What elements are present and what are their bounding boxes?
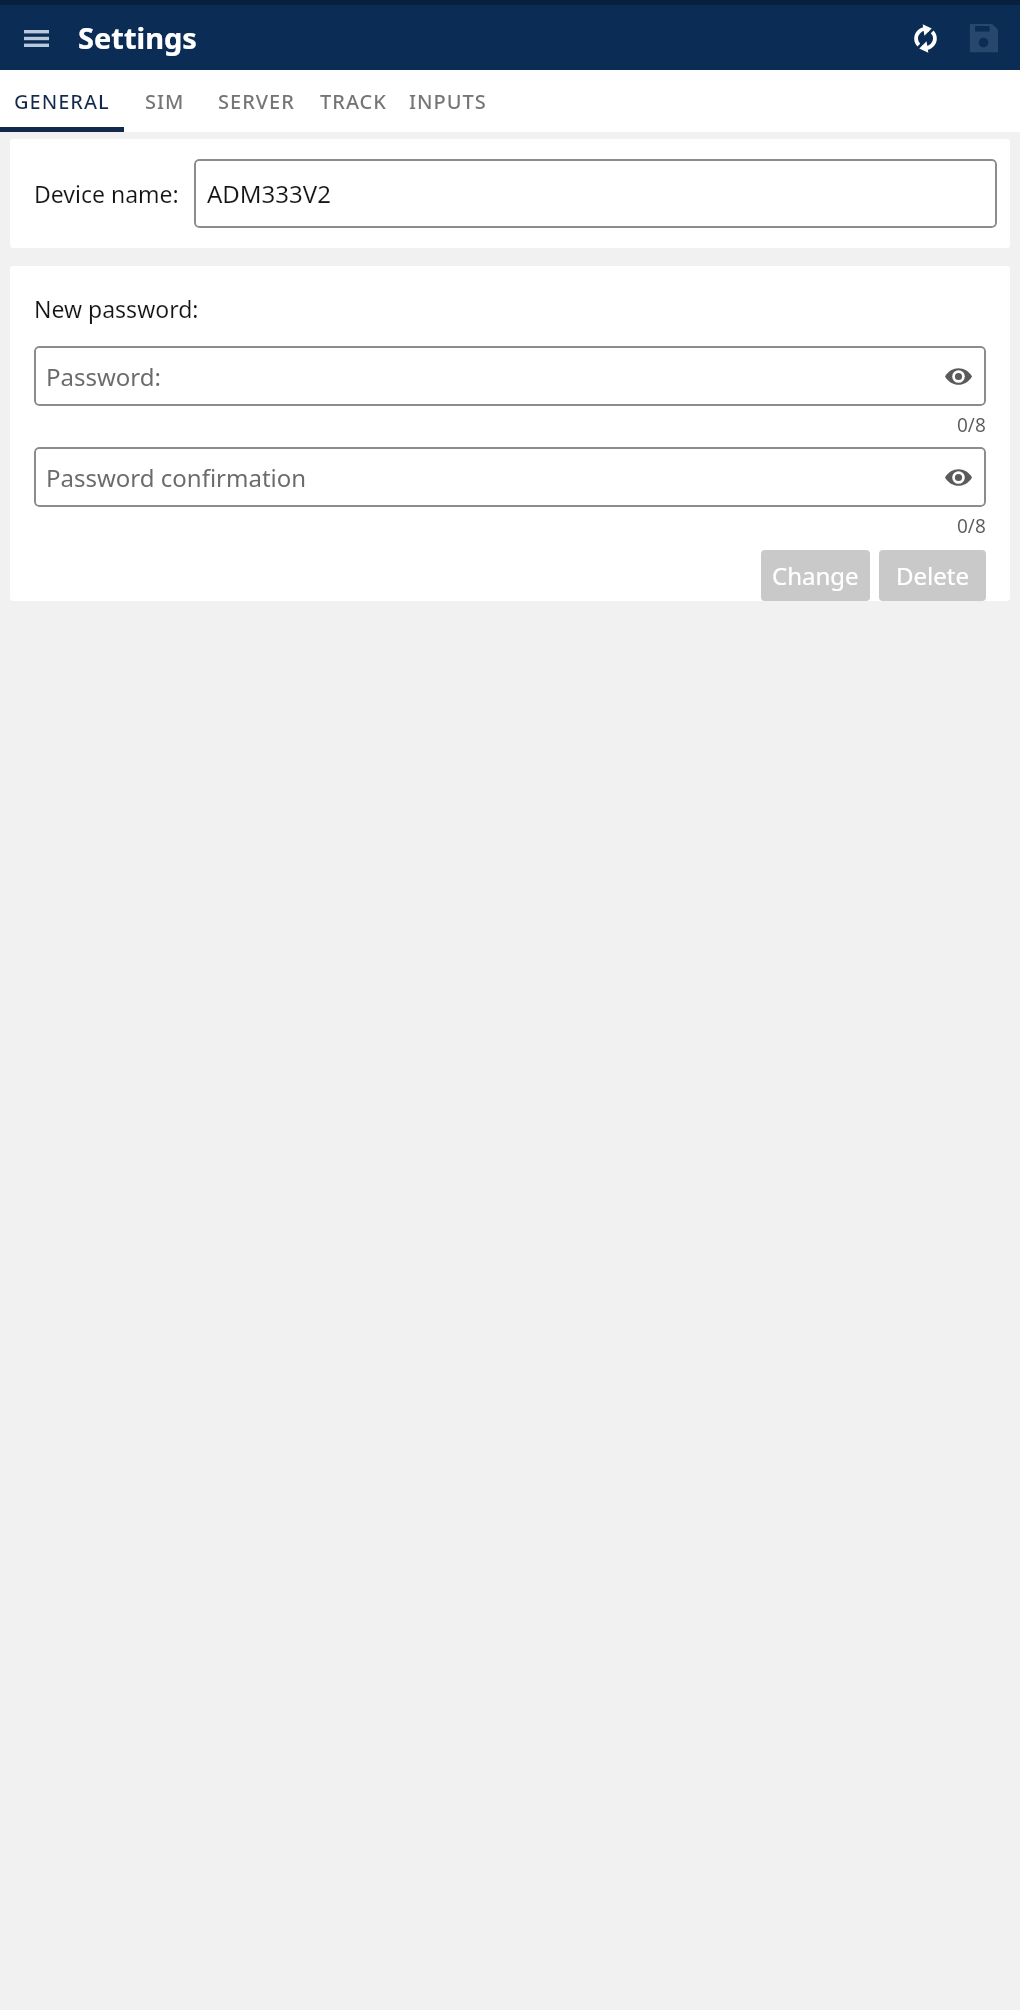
button[interactable]: Open navigation menu [14,16,58,60]
button[interactable]: Password: [34,346,986,406]
button[interactable]: Toggle password visibility [938,457,978,497]
staticText: INPUTS [409,88,487,115]
staticText: SIM [145,88,185,115]
button[interactable]: GENERAL [0,70,124,132]
staticText: Device name: [34,178,179,209]
staticText: 0/8 [957,513,986,539]
staticText: SERVER [218,88,295,115]
button[interactable]: INPUTS [400,70,496,132]
staticText: Settings [78,18,197,57]
staticText: Password: [46,360,161,393]
button[interactable]: ADM333V2 [194,159,997,228]
staticText: New password: [34,293,199,324]
staticText: Delete [896,559,969,592]
staticText: Password confirmation [46,461,307,494]
button[interactable]: SIM [124,70,206,132]
staticText: Change [772,559,859,592]
button[interactable]: SERVER [206,70,307,132]
staticText: 0/8 [957,412,986,438]
button[interactable]: Toggle password visibility [938,356,978,396]
staticText: ADM333V2 [207,177,331,210]
button[interactable]: Password confirmation [34,447,986,507]
button[interactable]: Sync [900,13,950,63]
button[interactable]: Save [958,13,1008,63]
button[interactable]: TRACK [307,70,400,132]
staticText: TRACK [320,88,387,115]
button[interactable]: Delete [879,550,986,601]
staticText: GENERAL [14,88,110,115]
button[interactable]: Change [761,550,870,601]
